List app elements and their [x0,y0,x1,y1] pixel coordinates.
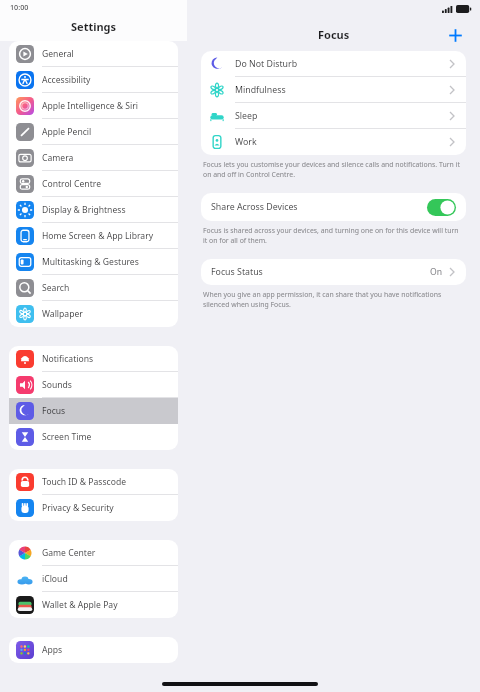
staticText: General [42,48,74,60]
staticText: Multitasking & Gestures [42,256,139,268]
staticText: Focus lets you customise your devices an… [203,160,462,179]
staticText: Display & Brightness [42,204,126,216]
button[interactable]: iCloud [9,566,178,592]
button[interactable]: Search [9,275,178,301]
staticText: Screen Time [42,431,92,443]
staticText: Sounds [42,379,72,391]
staticText: Work [235,136,257,148]
button[interactable]: Wallpaper [9,301,178,327]
button[interactable]: Do Not Disturb [201,51,466,77]
staticText: Game Center [42,547,96,559]
staticText: Settings [71,19,117,34]
button[interactable]: Control Centre [9,171,178,197]
staticText: Focus is shared across your devices, and… [203,226,462,245]
staticText: Home Screen & App Library [42,230,154,242]
button[interactable]: Focus [9,398,178,424]
button[interactable]: General [9,41,178,67]
staticText: Privacy & Security [42,502,114,514]
button[interactable]: Notifications [9,346,178,372]
button[interactable]: Game Center [9,540,178,566]
staticText: Focus [42,405,66,417]
staticText: Wallet & Apple Pay [42,599,118,611]
staticText: Search [42,282,70,294]
button[interactable]: Focus Status [201,259,466,285]
staticText: Camera [42,152,74,164]
staticText: Focus [318,27,350,42]
staticText: Apps [42,644,63,656]
button[interactable]: Multitasking & Gestures [9,249,178,275]
button[interactable]: Apple Intelligence & Siri [9,93,178,119]
staticText: Touch ID & Passcode [42,476,127,488]
staticText: Control Centre [42,178,101,190]
button[interactable]: Mindfulness [201,77,466,103]
staticText: Apple Pencil [42,126,92,138]
button[interactable]: Apple Pencil [9,119,178,145]
button[interactable]: Share Across Devices [201,193,466,221]
button[interactable]: Accessibility [9,67,178,93]
staticText: Mindfulness [235,84,286,96]
button[interactable]: Screen Time [9,424,178,450]
staticText: Sleep [235,110,258,122]
staticText: Do Not Disturb [235,58,298,70]
button[interactable]: Add Focus [444,24,466,46]
button[interactable]: Home Screen & App Library [9,223,178,249]
staticText: 10:00 [10,2,29,12]
button[interactable]: Sounds [9,372,178,398]
staticText: On [430,266,443,278]
button[interactable]: Privacy & Security [9,495,178,521]
staticText: Accessibility [42,74,91,86]
button[interactable]: Wallet & Apple Pay [9,592,178,618]
button[interactable]: Touch ID & Passcode [9,469,178,495]
staticText: When you give an app permission, it can … [203,290,462,309]
staticText: Wallpaper [42,308,83,320]
staticText: Share Across Devices [211,201,298,213]
button[interactable]: Display & Brightness [9,197,178,223]
button[interactable]: Apps [9,637,178,663]
staticText: iCloud [42,573,68,585]
staticText: Focus Status [211,266,263,278]
staticText: Notifications [42,353,94,365]
button[interactable]: Work [201,129,466,155]
button[interactable]: Sleep [201,103,466,129]
button[interactable]: Camera [9,145,178,171]
staticText: Apple Intelligence & Siri [42,100,139,112]
